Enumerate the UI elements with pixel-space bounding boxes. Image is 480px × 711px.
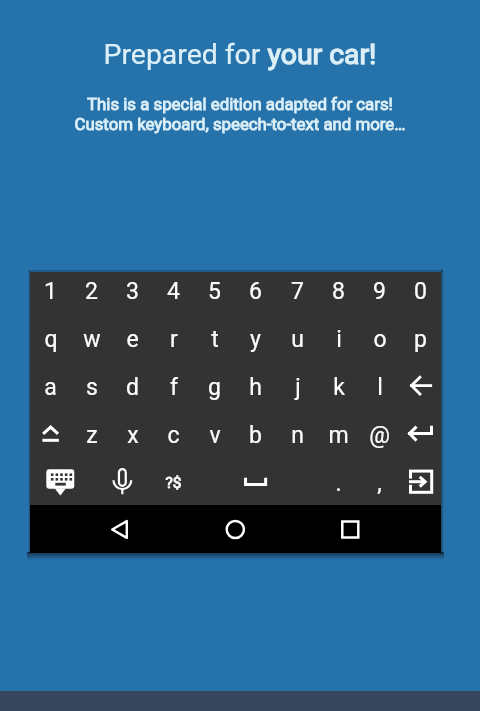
button[interactable]: x	[112, 411, 153, 459]
staticText: x	[127, 422, 139, 449]
staticText: q	[44, 326, 58, 353]
button[interactable]: t	[194, 315, 235, 363]
button[interactable]: s	[71, 363, 112, 411]
button[interactable]: Switch keyboard	[30, 459, 92, 507]
button[interactable]: c	[153, 411, 194, 459]
button[interactable]: k	[318, 363, 359, 411]
staticText: r	[170, 326, 178, 353]
staticText: ?$	[165, 474, 182, 492]
button[interactable]: d	[112, 363, 153, 411]
staticText: a	[44, 374, 57, 401]
button[interactable]: z	[71, 411, 112, 459]
button[interactable]: 9	[359, 272, 400, 315]
button[interactable]: q	[30, 315, 71, 363]
staticText: ,	[377, 470, 382, 497]
staticText: d	[126, 374, 139, 401]
staticText: u	[291, 326, 304, 353]
staticText: e	[126, 326, 139, 353]
staticText: l	[377, 374, 383, 401]
staticText: o	[373, 326, 387, 353]
button[interactable]: m	[318, 411, 359, 459]
button[interactable]: 8	[318, 272, 359, 315]
button[interactable]: h	[235, 363, 276, 411]
button[interactable]: ?$	[153, 459, 194, 507]
button[interactable]: u	[277, 315, 318, 363]
button[interactable]: f	[153, 363, 194, 411]
button[interactable]: 4	[153, 272, 194, 315]
button[interactable]: ,	[359, 459, 400, 507]
button[interactable]: Enter	[400, 411, 441, 459]
button[interactable]: j	[277, 363, 318, 411]
staticText: k	[333, 374, 345, 401]
button[interactable]: p	[400, 315, 441, 363]
staticText: 9	[373, 278, 386, 305]
button[interactable]: Voice input	[92, 459, 154, 507]
button[interactable]: b	[235, 411, 276, 459]
staticText: v	[209, 422, 221, 449]
button[interactable]: 6	[235, 272, 276, 315]
button[interactable]: 7	[277, 272, 318, 315]
staticText: p	[414, 326, 427, 353]
staticText: w	[83, 326, 101, 353]
staticText: @	[369, 422, 390, 449]
staticText: This is a special edition adapted for ca…	[0, 94, 480, 134]
staticText: m	[328, 422, 349, 449]
button[interactable]: 5	[194, 272, 235, 315]
staticText: f	[170, 374, 178, 401]
button[interactable]: w	[71, 315, 112, 363]
button[interactable]: 3	[112, 272, 153, 315]
button[interactable]: 1	[30, 272, 71, 315]
staticText: 6	[249, 278, 262, 305]
staticText: Prepared for your car!	[0, 38, 480, 71]
button[interactable]: Space	[194, 459, 317, 507]
staticText: i	[336, 326, 342, 353]
button[interactable]: r	[153, 315, 194, 363]
button[interactable]: g	[194, 363, 235, 411]
staticText: s	[86, 374, 98, 401]
button[interactable]: 0	[400, 272, 441, 315]
button[interactable]: Shift	[30, 411, 71, 459]
staticText: g	[208, 374, 221, 401]
staticText: t	[211, 326, 219, 353]
staticText: 7	[291, 278, 304, 305]
button[interactable]: y	[235, 315, 276, 363]
button[interactable]: i	[318, 315, 359, 363]
staticText: y	[250, 326, 261, 353]
staticText: c	[167, 422, 180, 449]
button[interactable]: o	[359, 315, 400, 363]
staticText: .	[335, 470, 342, 497]
staticText: z	[86, 422, 98, 449]
button[interactable]: v	[194, 411, 235, 459]
button[interactable]: e	[112, 315, 153, 363]
button[interactable]: @	[359, 411, 400, 459]
button[interactable]: a	[30, 363, 71, 411]
staticText: 1	[44, 278, 57, 305]
button[interactable]: Backspace	[400, 363, 441, 411]
staticText: j	[295, 374, 301, 401]
staticText: h	[249, 374, 262, 401]
staticText: 2	[85, 278, 98, 305]
staticText: 5	[208, 278, 221, 305]
staticText: n	[291, 422, 304, 449]
button[interactable]: .	[318, 459, 359, 507]
button[interactable]: l	[359, 363, 400, 411]
staticText: 8	[332, 278, 345, 305]
staticText: 0	[414, 278, 427, 305]
staticText: 3	[126, 278, 139, 305]
button[interactable]: n	[277, 411, 318, 459]
button[interactable]: 2	[71, 272, 112, 315]
button[interactable]: Done	[400, 459, 441, 507]
staticText: 4	[167, 278, 180, 305]
staticText: b	[249, 422, 262, 449]
